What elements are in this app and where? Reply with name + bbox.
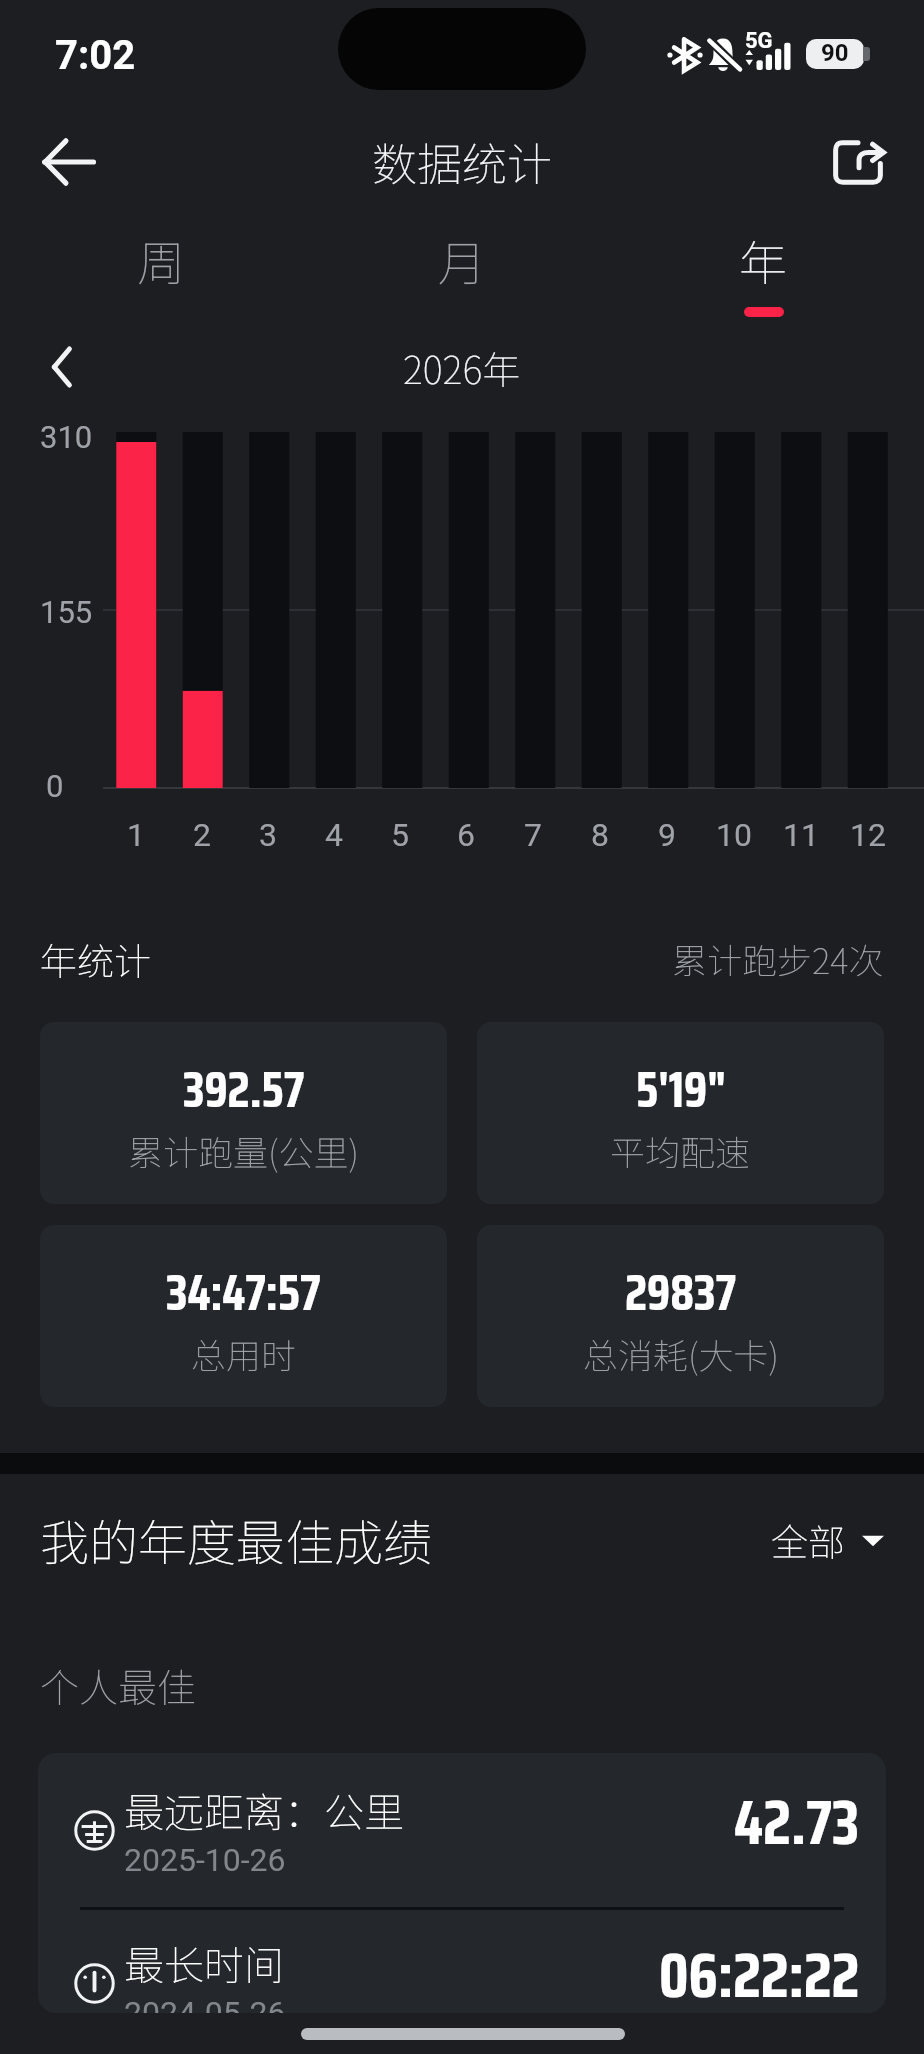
staticText: 5: [391, 816, 409, 854]
button[interactable]: 全部: [765, 1507, 890, 1573]
staticText: 个人最佳: [40, 1657, 197, 1713]
button[interactable]: 年: [613, 213, 914, 317]
staticText: 0: [46, 768, 64, 804]
staticText: 全部: [771, 1513, 845, 1567]
staticText: 7: [524, 816, 542, 854]
staticText: 1: [127, 816, 145, 854]
button[interactable]: Back: [24, 118, 112, 206]
staticText: 7:02: [55, 32, 136, 79]
staticText: 周: [137, 225, 186, 295]
button[interactable]: Share: [814, 118, 902, 206]
staticText: 总用时: [191, 1328, 297, 1379]
staticText: 2024-05-26: [124, 1994, 286, 2013]
staticText: 最长时间: [124, 1934, 284, 1992]
staticText: 12: [850, 816, 886, 854]
button[interactable]: Previous year: [30, 336, 92, 398]
staticText: 年: [739, 225, 788, 295]
staticText: 34:47:57: [166, 1254, 321, 1331]
staticText: 29837: [625, 1254, 737, 1331]
staticText: 平均配速: [610, 1125, 751, 1176]
button[interactable]: 29837: [477, 1225, 884, 1407]
button[interactable]: 392.57: [40, 1022, 447, 1204]
staticText: 4: [325, 816, 343, 854]
button[interactable]: 最远距离：公里: [38, 1753, 886, 1907]
button[interactable]: 5'19": [477, 1022, 884, 1204]
staticText: 310: [40, 419, 93, 455]
staticText: 06:22:22: [659, 1927, 860, 2013]
staticText: 90: [821, 39, 849, 67]
button[interactable]: 最长时间: [38, 1906, 886, 2013]
staticText: 155: [40, 594, 93, 630]
staticText: 6: [457, 816, 475, 854]
staticText: 月: [438, 225, 487, 295]
staticText: 累计跑量(公里): [128, 1125, 359, 1176]
staticText: 3: [259, 816, 277, 854]
button[interactable]: 34:47:57: [40, 1225, 447, 1407]
staticText: 392.57: [183, 1051, 305, 1128]
button[interactable]: 月: [312, 213, 613, 317]
staticText: 8: [591, 816, 609, 854]
staticText: 总消耗(大卡): [583, 1328, 779, 1379]
staticText: 11: [783, 816, 819, 854]
staticText: 累计跑步24次: [672, 933, 884, 984]
staticText: 42.73: [734, 1774, 860, 1872]
staticText: 2: [193, 816, 211, 854]
staticText: 数据统计: [372, 129, 553, 194]
staticText: 5'19": [636, 1051, 726, 1128]
staticText: 9: [658, 816, 676, 854]
staticText: 年统计: [40, 932, 151, 986]
staticText: 10: [716, 816, 752, 854]
staticText: 我的年度最佳成绩: [40, 1504, 433, 1575]
staticText: 最远距离：公里: [124, 1781, 404, 1839]
staticText: 2025-10-26: [124, 1841, 286, 1879]
staticText: 5G: [745, 28, 773, 54]
staticText: 2026年: [403, 340, 521, 395]
button[interactable]: 周: [10, 213, 312, 317]
